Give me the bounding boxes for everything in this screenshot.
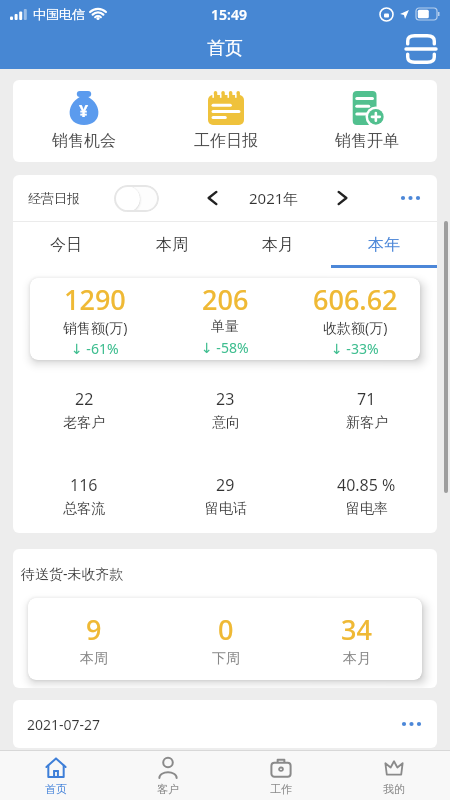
staticText: 40.85 % <box>337 474 396 496</box>
button[interactable]: 2021-07-27 <box>27 700 423 748</box>
staticText: 留电话 <box>205 500 247 518</box>
staticText: 首页 <box>207 37 243 60</box>
button[interactable]: 今日 <box>13 222 119 268</box>
button[interactable]: 首页 <box>0 751 112 800</box>
staticText: 新客户 <box>346 414 388 432</box>
staticText: 本周 <box>156 235 188 255</box>
button[interactable]: 606.62 <box>290 281 420 358</box>
button[interactable] <box>400 190 422 206</box>
button[interactable]: 34 <box>291 611 422 668</box>
staticText: 今日 <box>50 235 82 255</box>
staticText: 老客户 <box>63 414 105 432</box>
staticText: 9 <box>86 611 102 648</box>
staticText: 客户 <box>157 782 179 796</box>
staticText: 我的 <box>383 782 405 796</box>
staticText: 22 <box>75 388 94 410</box>
staticText: 销售额(万) <box>63 318 128 337</box>
staticText: 0 <box>218 611 234 648</box>
staticText: 本月 <box>262 235 294 255</box>
staticText: 工作日报 <box>194 131 258 151</box>
staticText: ¥ <box>79 100 89 122</box>
button[interactable] <box>402 30 440 68</box>
staticText: 首页 <box>45 782 67 796</box>
button[interactable] <box>337 190 348 206</box>
staticText: 销售机会 <box>52 131 116 151</box>
staticText: 中国电信 <box>33 6 85 22</box>
button[interactable]: 本月 <box>225 222 331 268</box>
staticText: 下周 <box>212 650 240 668</box>
button[interactable]: 工作日报 <box>155 80 296 162</box>
staticText: ↓ -58% <box>201 338 249 357</box>
button[interactable] <box>114 185 159 212</box>
button[interactable]: 206 <box>160 281 290 357</box>
staticText: 待送货-未收齐款 <box>21 564 124 583</box>
button[interactable]: 1290 <box>30 281 160 358</box>
button[interactable] <box>207 190 218 206</box>
button[interactable]: 销售开单 <box>296 80 437 162</box>
button[interactable]: 客户 <box>112 751 224 800</box>
staticText: 留电率 <box>346 500 388 518</box>
staticText: 23 <box>216 388 235 410</box>
staticText: 116 <box>70 474 98 496</box>
staticText: 意向 <box>212 414 240 432</box>
staticText: 34 <box>341 611 372 648</box>
staticText: 1290 <box>64 281 126 318</box>
staticText: 29 <box>216 474 235 496</box>
button[interactable]: 工作 <box>224 751 337 800</box>
button[interactable]: 0 <box>160 611 291 668</box>
staticText: 本年 <box>368 235 400 255</box>
staticText: 单量 <box>211 318 239 336</box>
staticText: 总客流 <box>63 500 105 518</box>
staticText: ↓ -61% <box>71 339 119 358</box>
button[interactable]: ¥ <box>13 80 155 162</box>
staticText: 销售开单 <box>335 131 399 151</box>
staticText: 2021年 <box>249 188 299 208</box>
staticText: 收款额(万) <box>323 318 388 337</box>
staticText: 本月 <box>343 650 371 668</box>
staticText: 工作 <box>270 782 292 796</box>
button[interactable]: 9 <box>28 611 160 668</box>
staticText: 本周 <box>80 650 108 668</box>
staticText: 206 <box>202 281 249 318</box>
staticText: ↓ -33% <box>331 339 379 358</box>
staticText: 71 <box>357 388 376 410</box>
button[interactable]: 本年 <box>331 222 437 268</box>
button[interactable]: 本周 <box>119 222 225 268</box>
button[interactable]: 我的 <box>337 751 450 800</box>
staticText: 2021-07-27 <box>27 715 101 734</box>
staticText: 606.62 <box>313 281 398 318</box>
staticText: 15:49 <box>211 5 247 24</box>
staticText: 经营日报 <box>28 190 80 206</box>
